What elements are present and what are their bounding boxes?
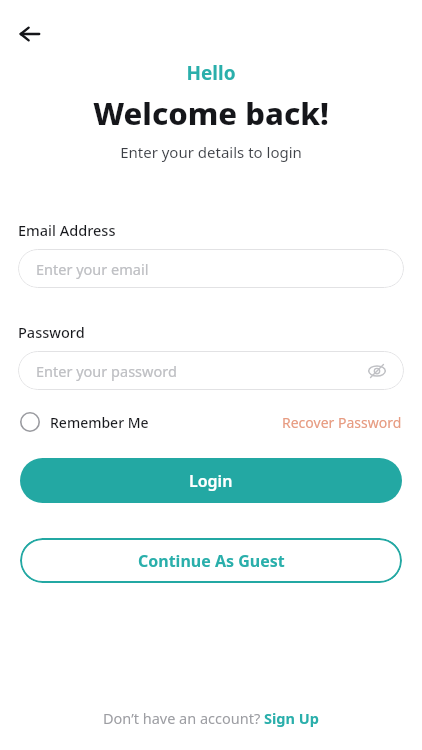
button[interactable]: Remember Me: [18, 408, 151, 436]
staticText: Continue As Guest: [138, 550, 285, 572]
button[interactable]: Enter your password: [18, 351, 404, 390]
button[interactable]: Enter your email: [18, 249, 404, 288]
staticText: Email Address: [18, 220, 116, 240]
button[interactable]: Show password: [364, 358, 390, 384]
staticText: Enter your password: [36, 361, 177, 381]
staticText: Welcome back!: [0, 92, 422, 134]
button[interactable]: Login: [20, 458, 402, 503]
staticText: Remember Me: [50, 413, 149, 432]
button[interactable]: Recover Password: [280, 409, 404, 436]
staticText: Login: [189, 470, 233, 492]
staticText: Don’t have an account? Sign Up: [103, 708, 319, 728]
button[interactable]: Back: [8, 12, 52, 56]
button[interactable]: Continue As Guest: [20, 538, 402, 583]
staticText: Hello: [0, 60, 422, 86]
staticText: Enter your details to login: [0, 142, 422, 162]
staticText: Password: [18, 322, 85, 342]
button[interactable]: Don’t have an account? Sign Up: [97, 704, 325, 732]
staticText: Recover Password: [282, 413, 402, 432]
staticText: Enter your email: [36, 259, 149, 279]
